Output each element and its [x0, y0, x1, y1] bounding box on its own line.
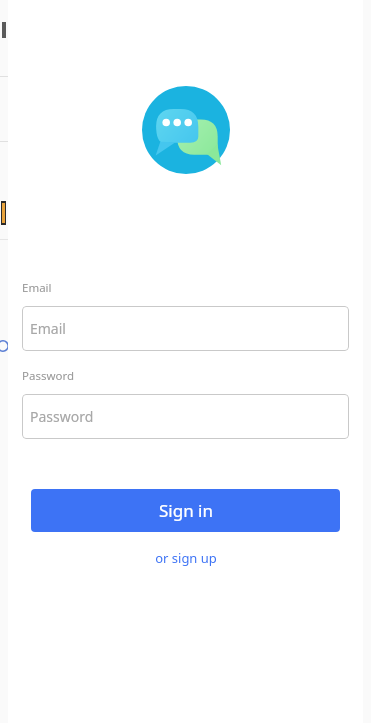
staticText: or sign up — [155, 549, 217, 567]
staticText: Password — [22, 368, 75, 384]
button[interactable]: Sign in — [31, 489, 340, 532]
staticText: Email — [22, 280, 52, 296]
staticText: Password — [30, 407, 94, 426]
button[interactable]: Password — [22, 394, 349, 439]
staticText: Email — [30, 319, 66, 338]
button[interactable]: or sign up — [8, 545, 363, 571]
staticText: Sign in — [159, 499, 213, 522]
button[interactable]: Email — [22, 306, 349, 351]
